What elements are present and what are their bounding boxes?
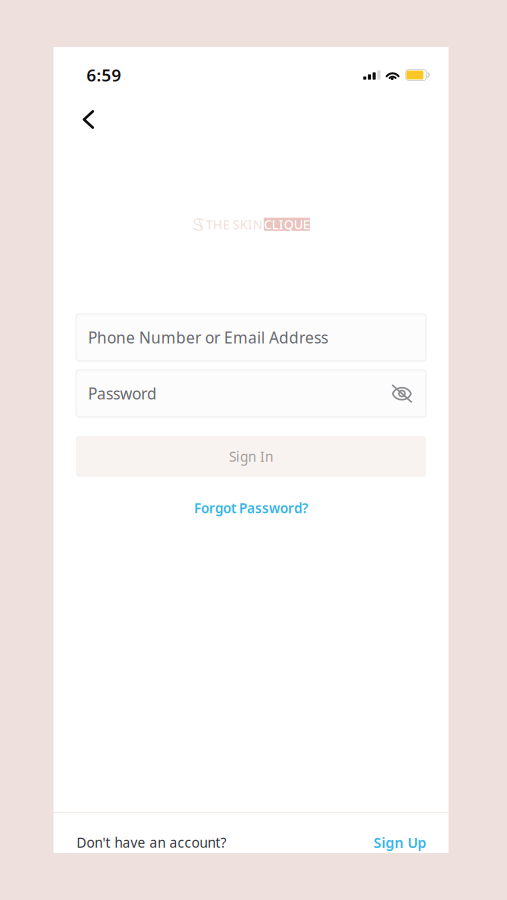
staticText: THE SKIN bbox=[206, 215, 263, 233]
staticText: Don't have an account? bbox=[76, 833, 226, 852]
button[interactable]: Forgot Password? bbox=[194, 497, 308, 519]
staticText: CLIQUE bbox=[264, 215, 310, 233]
button[interactable]: Back bbox=[73, 103, 103, 136]
staticText: 6:59 bbox=[86, 64, 121, 86]
button[interactable]: Show password bbox=[392, 384, 412, 402]
button[interactable]: Sign In bbox=[76, 436, 426, 477]
button[interactable]: Sign Up bbox=[373, 833, 426, 852]
staticText: Phone Number or Email Address bbox=[88, 327, 328, 348]
staticText: Sign Up bbox=[373, 833, 426, 852]
staticText: Forgot Password? bbox=[194, 499, 308, 517]
staticText: Sign In bbox=[229, 447, 273, 466]
staticText: Password bbox=[88, 383, 157, 404]
